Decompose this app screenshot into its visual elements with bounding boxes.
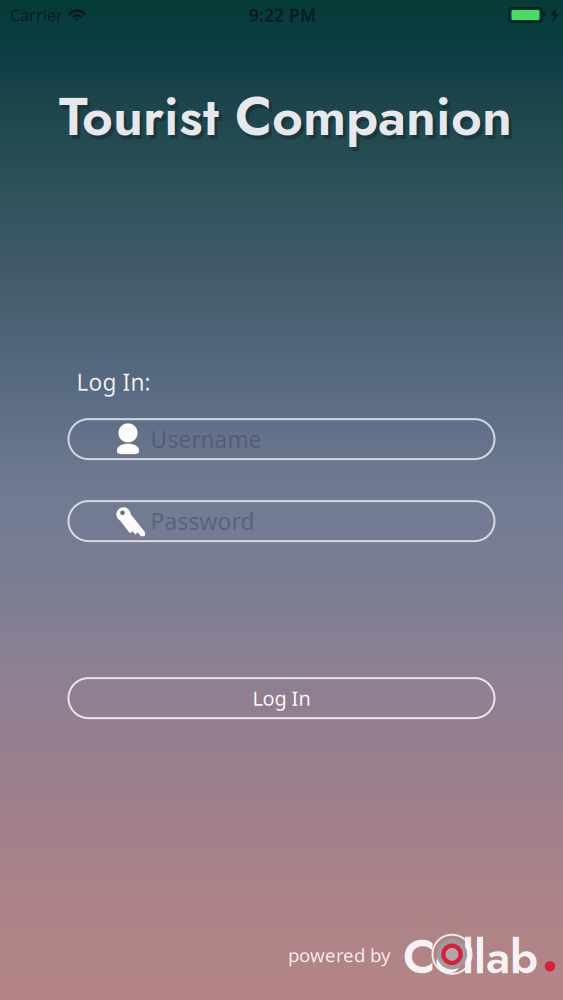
staticText: Tourist Companion <box>62 82 515 159</box>
staticText: Log In <box>252 685 310 711</box>
staticText: Log In: <box>76 367 150 397</box>
button[interactable]: Log In <box>68 678 494 718</box>
staticText: Username <box>150 424 261 454</box>
staticText: powered by <box>288 943 391 967</box>
staticText: 9:22 PM <box>249 3 316 26</box>
staticText: Tourist Companion <box>59 78 512 155</box>
staticText: Password <box>150 506 254 536</box>
button[interactable]: Username <box>68 419 494 459</box>
staticText: Collab <box>403 923 538 991</box>
staticText: Carrier <box>10 4 63 26</box>
button[interactable]: Password <box>68 501 494 541</box>
